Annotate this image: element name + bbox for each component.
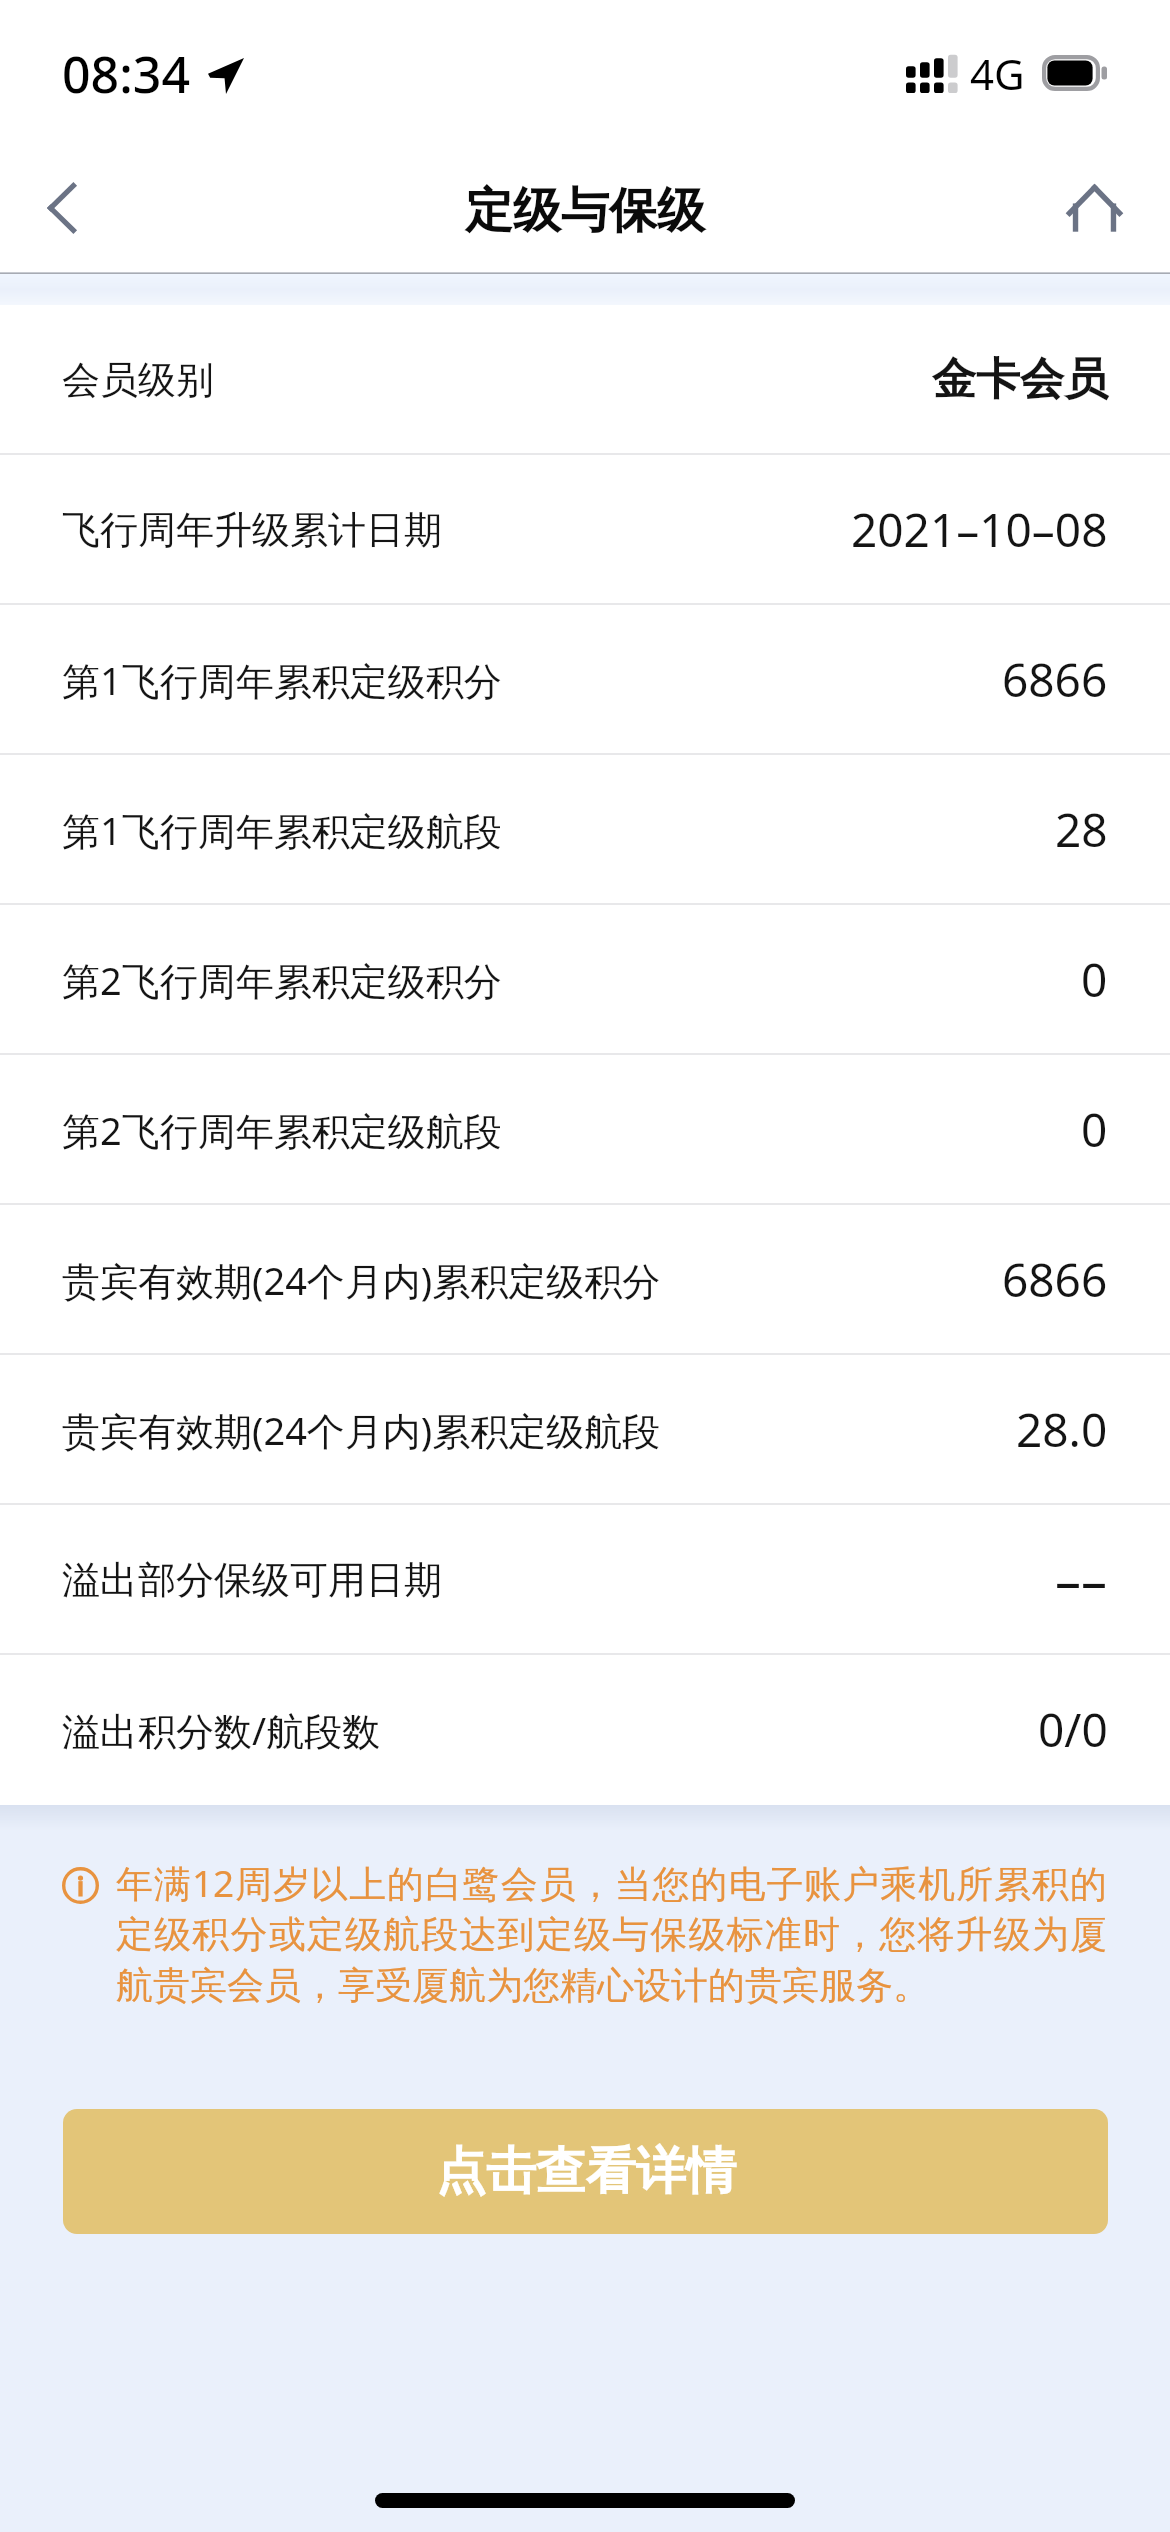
staticText: 0/0 — [1038, 1698, 1108, 1761]
button[interactable]: Home — [1029, 147, 1159, 266]
staticText: 第1飞行周年累积定级积分 — [62, 654, 502, 706]
staticText: 贵宾有效期(24个月内)累积定级积分 — [62, 1254, 661, 1306]
staticText: 贵宾有效期(24个月内)累积定级航段 — [62, 1404, 661, 1456]
button[interactable]: 第1飞行周年累积定级积分 — [0, 605, 1170, 753]
staticText: 0 — [1081, 1098, 1108, 1161]
button[interactable]: 第1飞行周年累积定级航段 — [0, 755, 1170, 903]
staticText: 6866 — [1002, 648, 1108, 711]
button[interactable]: 第2飞行周年累积定级积分 — [0, 905, 1170, 1053]
staticText: 4G — [970, 45, 1025, 102]
button[interactable]: 溢出部分保级可用日期 — [0, 1505, 1170, 1653]
staticText: 28.0 — [1016, 1398, 1108, 1461]
staticText: 第2飞行周年累积定级航段 — [62, 1104, 502, 1156]
button[interactable]: 贵宾有效期(24个月内)累积定级积分 — [0, 1205, 1170, 1353]
staticText: 定级与保级 — [465, 181, 705, 241]
staticText: 0 — [1081, 948, 1108, 1011]
button[interactable]: 贵宾有效期(24个月内)累积定级航段 — [0, 1355, 1170, 1503]
button[interactable]: 点击查看详情 — [63, 2109, 1108, 2234]
button[interactable]: Back — [2, 147, 122, 269]
button[interactable]: 会员级别 — [0, 305, 1170, 453]
button[interactable]: 溢出积分数/航段数 — [0, 1655, 1170, 1803]
staticText: 溢出部分保级可用日期 — [62, 1556, 442, 1604]
staticText: 溢出积分数/航段数 — [62, 1704, 381, 1756]
staticText: 会员级别 — [62, 356, 214, 404]
staticText: –– — [1055, 1544, 1108, 1615]
staticText: 08:34 — [62, 40, 190, 108]
button[interactable]: 第2飞行周年累积定级航段 — [0, 1055, 1170, 1203]
staticText: 6866 — [1002, 1248, 1108, 1311]
staticText: 第1飞行周年累积定级航段 — [62, 804, 502, 856]
staticText: 飞行周年升级累计日期 — [62, 506, 442, 554]
staticText: 第2飞行周年累积定级积分 — [62, 954, 502, 1006]
staticText: 年满12周岁以上的白鹭会员，当您的电子账户乘机所累积的定级积分或定级航段达到定级… — [116, 1857, 1107, 2009]
staticText: 金卡会员 — [932, 352, 1108, 407]
staticText: 28 — [1055, 798, 1108, 861]
button[interactable]: 飞行周年升级累计日期 — [0, 455, 1170, 603]
staticText: 2021–10–08 — [851, 498, 1108, 561]
staticText: 点击查看详情 — [436, 2140, 736, 2203]
